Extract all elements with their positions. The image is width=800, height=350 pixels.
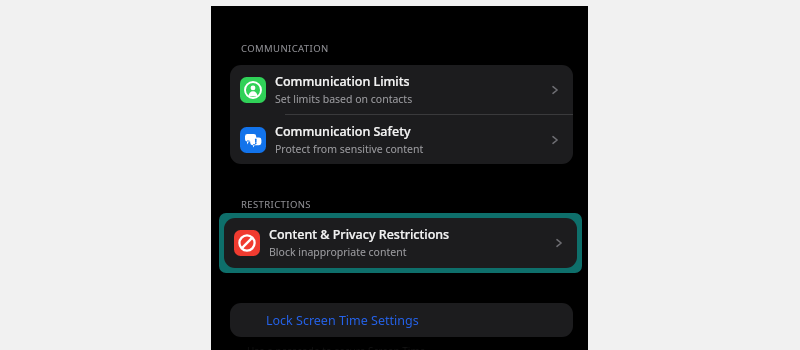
staticText: RESTRICTIONS [241, 198, 311, 211]
staticText: Block inappropriate content [269, 245, 407, 259]
button[interactable]: Communication Limits [230, 65, 573, 114]
button[interactable]: Communication Safety [230, 115, 573, 164]
staticText: Content & Privacy Restrictions [269, 226, 450, 243]
other: Open [553, 237, 565, 249]
button[interactable]: Content & Privacy Restrictions [224, 218, 577, 267]
other: Open [549, 134, 561, 146]
staticText: Lock Screen Time Settings [266, 312, 419, 329]
staticText: Protect from sensitive content [275, 142, 424, 156]
staticText: COMMUNICATION [241, 42, 329, 55]
staticText: Communication Limits [275, 73, 410, 90]
staticText: Use a passcode to secure Screen Time [247, 344, 426, 350]
other: Open [549, 84, 561, 96]
staticText: Communication Safety [275, 123, 411, 140]
button[interactable]: Lock Screen Time Settings [230, 303, 573, 337]
staticText: Set limits based on contacts [275, 92, 413, 106]
